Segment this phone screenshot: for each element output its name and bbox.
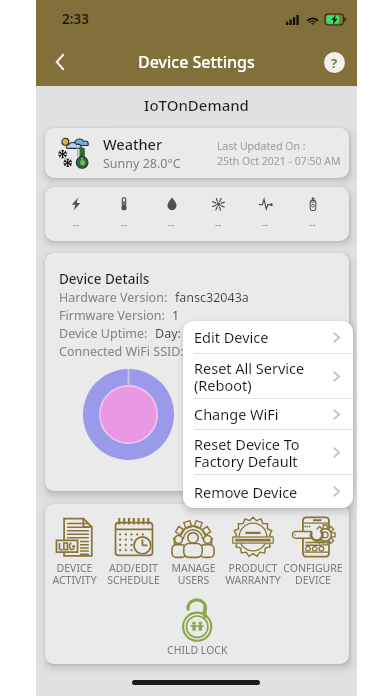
button[interactable]: Back	[44, 46, 76, 78]
button[interactable]: Sensor 1	[100, 197, 148, 231]
staticText: MANAGE USERS	[171, 561, 216, 587]
staticText: Device Settings	[138, 51, 255, 73]
staticText: 25th Oct 2021 - 07:50 AM	[217, 154, 341, 168]
button[interactable]: Sensor 5	[289, 197, 336, 231]
staticText: CONFIGURE DEVICE	[283, 561, 343, 587]
staticText: Connected WiFi SSID:	[59, 343, 184, 360]
staticText: Device Details	[59, 270, 150, 288]
button[interactable]: CONFIGURE DEVICE	[283, 516, 343, 587]
button[interactable]: Sensor 0	[52, 197, 100, 231]
button[interactable]: MANAGE USERS	[163, 516, 223, 587]
button[interactable]: Edit Device	[183, 321, 353, 353]
button[interactable]: Weather	[45, 128, 349, 178]
staticText: ?	[331, 54, 338, 72]
button[interactable]: Help	[324, 52, 345, 73]
staticText: --	[309, 217, 316, 231]
staticText: 1	[172, 307, 180, 324]
staticText: Last Updated On :	[217, 139, 306, 153]
button[interactable]: Change WiFi	[183, 399, 353, 429]
staticText: Edit Device	[194, 327, 330, 347]
button[interactable]: Sensor 3	[195, 197, 242, 231]
staticText: Remove Device	[194, 482, 330, 502]
staticText: PRODUCT WARRANTY	[225, 561, 281, 587]
button[interactable]: CHILD LOCK	[167, 599, 228, 657]
staticText: Sunny 28.0°C	[103, 155, 181, 172]
staticText: Reset Device To Factory Default	[194, 434, 330, 471]
staticText: Firmware Version:	[59, 307, 165, 324]
staticText: 2:33	[62, 10, 89, 28]
staticText: Change WiFi	[194, 404, 330, 424]
staticText: Weather	[103, 134, 163, 154]
button[interactable]: PRODUCT WARRANTY	[223, 516, 283, 587]
staticText: Hardware Version:	[59, 289, 168, 306]
staticText: fansc32043a	[175, 289, 249, 306]
staticText: CHILD LOCK	[167, 643, 228, 657]
staticText: IoTOnDemand	[36, 95, 357, 115]
staticText: Device Uptime:	[59, 325, 148, 342]
button[interactable]: Reset All Service (Reboot)	[183, 354, 353, 398]
staticText: --	[73, 217, 80, 231]
button[interactable]: Sensor 2	[148, 197, 195, 231]
button[interactable]: Remove Device	[183, 475, 353, 508]
button[interactable]: ADD/EDIT SCHEDULE	[104, 516, 163, 587]
button[interactable]: Sensor 4	[242, 197, 289, 231]
staticText: Reset All Service (Reboot)	[194, 358, 330, 395]
staticText: Day:	[155, 325, 181, 342]
staticText: --	[168, 217, 175, 231]
staticText: DEVICE ACTIVITY	[52, 561, 97, 587]
staticText: ADD/EDIT SCHEDULE	[107, 561, 160, 587]
button[interactable]: DEVICE ACTIVITY	[45, 516, 104, 587]
staticText: --	[262, 217, 269, 231]
button[interactable]: Reset Device To Factory Default	[183, 430, 353, 474]
staticText: --	[121, 217, 128, 231]
staticText: --	[215, 217, 222, 231]
